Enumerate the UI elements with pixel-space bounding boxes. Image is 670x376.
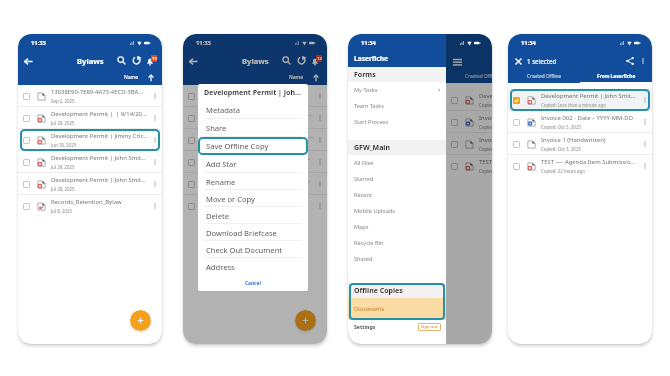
button[interactable]: Development Permit | Jiminy Cricke...: [183, 129, 327, 151]
button[interactable]: Sign out: [418, 323, 441, 331]
button[interactable]: Add: [130, 310, 151, 331]
button[interactable]: Add Star: [198, 155, 308, 173]
button[interactable]: Recycle Bin: [348, 235, 446, 251]
button[interactable]: More options: [150, 157, 160, 167]
button[interactable]: Add: [295, 310, 316, 331]
staticText: Delete: [206, 211, 230, 221]
button[interactable]: Name: [122, 73, 141, 82]
button[interactable]: Share: [623, 54, 636, 67]
button[interactable]: Delete: [198, 207, 308, 224]
button[interactable]: My Tasks: [348, 82, 446, 98]
staticText: GFW_Main: [354, 143, 390, 153]
button[interactable]: Records_Retention_Bylaw: [18, 195, 162, 217]
button[interactable]: Sort ascending: [311, 73, 321, 83]
staticText: Records_Retention_Bylaw: [216, 198, 287, 206]
staticText: Development Permit | | 9/14/2023...: [51, 110, 148, 118]
button[interactable]: More options: [150, 91, 160, 101]
button[interactable]: Check Out Document: [198, 241, 308, 258]
staticText: Offline Copies: [354, 286, 403, 296]
staticText: 12: [152, 56, 157, 62]
button[interactable]: Created Offline: [508, 70, 580, 83]
button[interactable]: Back: [186, 54, 200, 68]
button[interactable]: Address: [198, 258, 308, 275]
button[interactable]: Records_Retention_Bylaw: [183, 195, 327, 217]
button[interactable]: Notifications: [144, 53, 159, 68]
button[interactable]: Cancel: [198, 275, 308, 291]
button[interactable]: More options: [640, 139, 650, 149]
button[interactable]: Development Permit | John Smith |...: [18, 151, 162, 173]
staticText: Jul 29, 2025: [51, 164, 75, 170]
staticText: Forms: [354, 70, 376, 80]
button[interactable]: 13038E90-7E89-4A73-4ECD-3BA...: [18, 85, 162, 107]
button[interactable]: Search: [114, 53, 129, 68]
button[interactable]: Invoice 1 (Handwritten): [446, 133, 492, 155]
staticText: Add Star: [206, 159, 237, 169]
button[interactable]: 13038E90-7E89-4A73-4ECD-3BA...: [183, 85, 327, 107]
staticText: Copied: Less than a minute ago: [541, 102, 606, 108]
button[interactable]: Start Process: [348, 114, 446, 130]
button[interactable]: More options: [150, 135, 160, 145]
button[interactable]: Starred: [348, 171, 446, 187]
button[interactable]: Recent: [348, 187, 446, 203]
button[interactable]: More options: [315, 201, 325, 211]
button[interactable]: TEST —- Agenda Item Submission...: [446, 155, 492, 177]
button[interactable]: Refresh: [294, 53, 309, 68]
button[interactable]: Maps: [348, 219, 446, 235]
button[interactable]: Development Permit | John Smith |...: [183, 173, 327, 195]
button[interactable]: Download Briefcase: [198, 224, 308, 241]
button[interactable]: Development Permit | | 9/14/2023...: [18, 107, 162, 129]
button[interactable]: All Files: [348, 155, 446, 171]
staticText: Address: [206, 262, 235, 272]
button[interactable]: Invoice 002 - Date – YYYY-MM-DD: [508, 111, 652, 133]
button[interactable]: Rename: [198, 173, 308, 190]
button[interactable]: Mobile Uploads: [348, 203, 446, 219]
button[interactable]: Shared: [348, 251, 446, 267]
button[interactable]: Team Tasks: [348, 98, 446, 114]
button[interactable]: More options: [636, 54, 649, 67]
button[interactable]: More options: [640, 161, 650, 171]
staticText: Copied: Oct 3, 2025: [541, 124, 581, 130]
staticText: Invoice 002 - Date – YYYY-MM-DD: [479, 114, 492, 122]
button[interactable]: More options: [150, 201, 160, 211]
button[interactable]: Search: [279, 53, 294, 68]
button[interactable]: Invoice 002 - Date – YYYY-MM-DD: [446, 111, 492, 133]
button[interactable]: More options: [315, 179, 325, 189]
button[interactable]: Metadata: [198, 101, 308, 119]
button[interactable]: Save Offline Copy: [198, 137, 308, 155]
staticText: Maps: [354, 223, 369, 231]
button[interactable]: More options: [315, 113, 325, 123]
button[interactable]: Development Permit | John Smith |...: [446, 89, 492, 111]
button[interactable]: Development Permit | Jiminy Cricke...: [18, 129, 162, 151]
button[interactable]: Development Permit | John Smith |...: [183, 151, 327, 173]
button[interactable]: Development Permit | John Smith |...: [18, 173, 162, 195]
staticText: Share: [206, 123, 227, 133]
button[interactable]: Development Permit | | 9/14/2023...: [183, 107, 327, 129]
button[interactable]: Documents: [348, 298, 446, 320]
staticText: Bylaws: [77, 56, 104, 66]
button[interactable]: From Laserfiche: [580, 70, 652, 83]
button[interactable]: More options: [640, 117, 650, 127]
staticText: Documents: [354, 305, 385, 313]
button[interactable]: Name: [287, 73, 306, 82]
button[interactable]: Move or Copy: [198, 190, 308, 207]
button[interactable]: Back: [21, 54, 35, 68]
button[interactable]: Close: [512, 55, 524, 67]
button[interactable]: More options: [315, 135, 325, 145]
button[interactable]: Invoice 1 (Handwritten): [508, 133, 652, 155]
button[interactable]: More options: [315, 157, 325, 167]
button[interactable]: Created Offline: [446, 70, 492, 83]
button[interactable]: More options: [150, 113, 160, 123]
button[interactable]: Development Permit | John Smith |...: [508, 89, 652, 111]
button[interactable]: Sort ascending: [146, 73, 156, 83]
button[interactable]: More options: [315, 91, 325, 101]
button[interactable]: Menu: [450, 54, 464, 68]
button[interactable]: Refresh: [129, 53, 144, 68]
button[interactable]: Share: [198, 119, 308, 137]
staticText: Copied: Oct 3, 2025: [541, 146, 581, 152]
staticText: Mobile Uploads: [354, 207, 396, 215]
button[interactable]: TEST —- Agenda Item Submission...: [508, 155, 652, 177]
button[interactable]: More options: [640, 95, 650, 105]
button[interactable]: More options: [150, 179, 160, 189]
button[interactable]: Notifications: [309, 53, 324, 68]
